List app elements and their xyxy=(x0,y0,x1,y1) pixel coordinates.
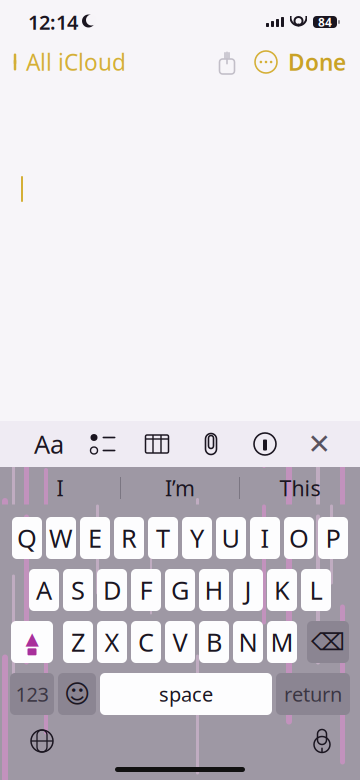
staticText: ✕ xyxy=(307,428,330,460)
button[interactable]: R xyxy=(114,517,144,559)
button[interactable]: S xyxy=(63,569,93,611)
button[interactable]: Text format xyxy=(30,426,68,462)
staticText: O xyxy=(289,521,309,555)
staticText: return xyxy=(284,681,342,707)
button[interactable]: I xyxy=(250,517,280,559)
button[interactable]: Emoji xyxy=(58,673,96,715)
staticText: S xyxy=(71,573,85,607)
button[interactable]: A xyxy=(29,569,59,611)
button[interactable]: I xyxy=(0,467,120,509)
staticText: Y xyxy=(190,521,204,555)
staticText: X xyxy=(104,625,119,659)
button[interactable]: B xyxy=(199,621,229,663)
staticText: All iCloud xyxy=(26,47,126,77)
button[interactable]: Shift xyxy=(11,621,53,663)
staticText: I’m xyxy=(165,474,195,502)
staticText: K xyxy=(274,573,290,607)
button[interactable]: Close keyboard xyxy=(300,426,338,462)
button[interactable]: U xyxy=(216,517,246,559)
staticText: E xyxy=(88,521,102,555)
staticText: M xyxy=(270,625,293,659)
button[interactable]: T xyxy=(148,517,178,559)
staticText: P xyxy=(325,521,340,555)
staticText: I xyxy=(56,474,63,502)
staticText: V xyxy=(172,625,187,659)
button[interactable]: Table xyxy=(138,426,176,462)
button[interactable]: M xyxy=(267,621,297,663)
staticText: W xyxy=(49,521,73,555)
button[interactable]: D xyxy=(97,569,127,611)
staticText: 12:14 xyxy=(28,9,78,35)
button[interactable]: Attach xyxy=(192,426,230,462)
staticText: Done xyxy=(288,47,346,77)
staticText: This xyxy=(279,474,320,502)
staticText: Q xyxy=(17,521,37,555)
staticText: ▲ xyxy=(25,629,38,648)
staticText: 123 xyxy=(15,681,48,707)
staticText: N xyxy=(238,625,257,659)
button[interactable]: Checklist xyxy=(84,426,122,462)
staticText: space xyxy=(159,681,213,707)
staticText: I xyxy=(260,521,269,555)
button[interactable]: Share xyxy=(210,45,244,79)
button[interactable]: 123 xyxy=(10,673,54,715)
staticText: F xyxy=(139,573,152,607)
button[interactable]: I’m xyxy=(121,467,239,509)
staticText: 84 xyxy=(318,14,332,30)
button[interactable]: P xyxy=(318,517,348,559)
staticText: G xyxy=(171,573,189,607)
staticText: Z xyxy=(71,625,85,659)
staticText: H xyxy=(204,573,223,607)
staticText: Aa xyxy=(34,427,64,461)
button[interactable]: Z xyxy=(63,621,93,663)
button[interactable]: return xyxy=(276,673,350,715)
staticText: ☺ xyxy=(64,680,90,708)
button[interactable]: L xyxy=(301,569,331,611)
staticText: R xyxy=(121,521,137,555)
button[interactable]: Q xyxy=(12,517,42,559)
button[interactable]: X xyxy=(97,621,127,663)
button[interactable]: G xyxy=(165,569,195,611)
button[interactable]: Y xyxy=(182,517,212,559)
button[interactable]: N xyxy=(233,621,263,663)
staticText: B xyxy=(206,625,222,659)
button[interactable]: W xyxy=(46,517,76,559)
button[interactable]: Switch keyboard xyxy=(0,723,54,759)
staticText: C xyxy=(138,625,154,659)
button[interactable]: More options xyxy=(244,46,288,78)
staticText: D xyxy=(103,573,121,607)
button[interactable]: C xyxy=(131,621,161,663)
button[interactable]: E xyxy=(80,517,110,559)
button[interactable]: Markup xyxy=(246,426,284,462)
button[interactable]: K xyxy=(267,569,297,611)
button[interactable]: All iCloud xyxy=(0,41,126,83)
staticText: J xyxy=(244,573,251,607)
button[interactable]: space xyxy=(100,673,272,715)
button[interactable]: Done xyxy=(288,41,360,83)
button[interactable]: J xyxy=(233,569,263,611)
staticText: T xyxy=(156,521,170,555)
button[interactable]: F xyxy=(131,569,161,611)
staticText: L xyxy=(309,573,322,607)
button[interactable]: Delete xyxy=(307,621,349,663)
staticText: A xyxy=(36,573,52,607)
button[interactable]: Dictate xyxy=(312,724,360,758)
staticText: U xyxy=(221,521,240,555)
button[interactable]: H xyxy=(199,569,229,611)
button[interactable]: V xyxy=(165,621,195,663)
button[interactable]: This xyxy=(240,467,360,509)
staticText: ⌫ xyxy=(311,628,345,656)
button[interactable]: O xyxy=(284,517,314,559)
